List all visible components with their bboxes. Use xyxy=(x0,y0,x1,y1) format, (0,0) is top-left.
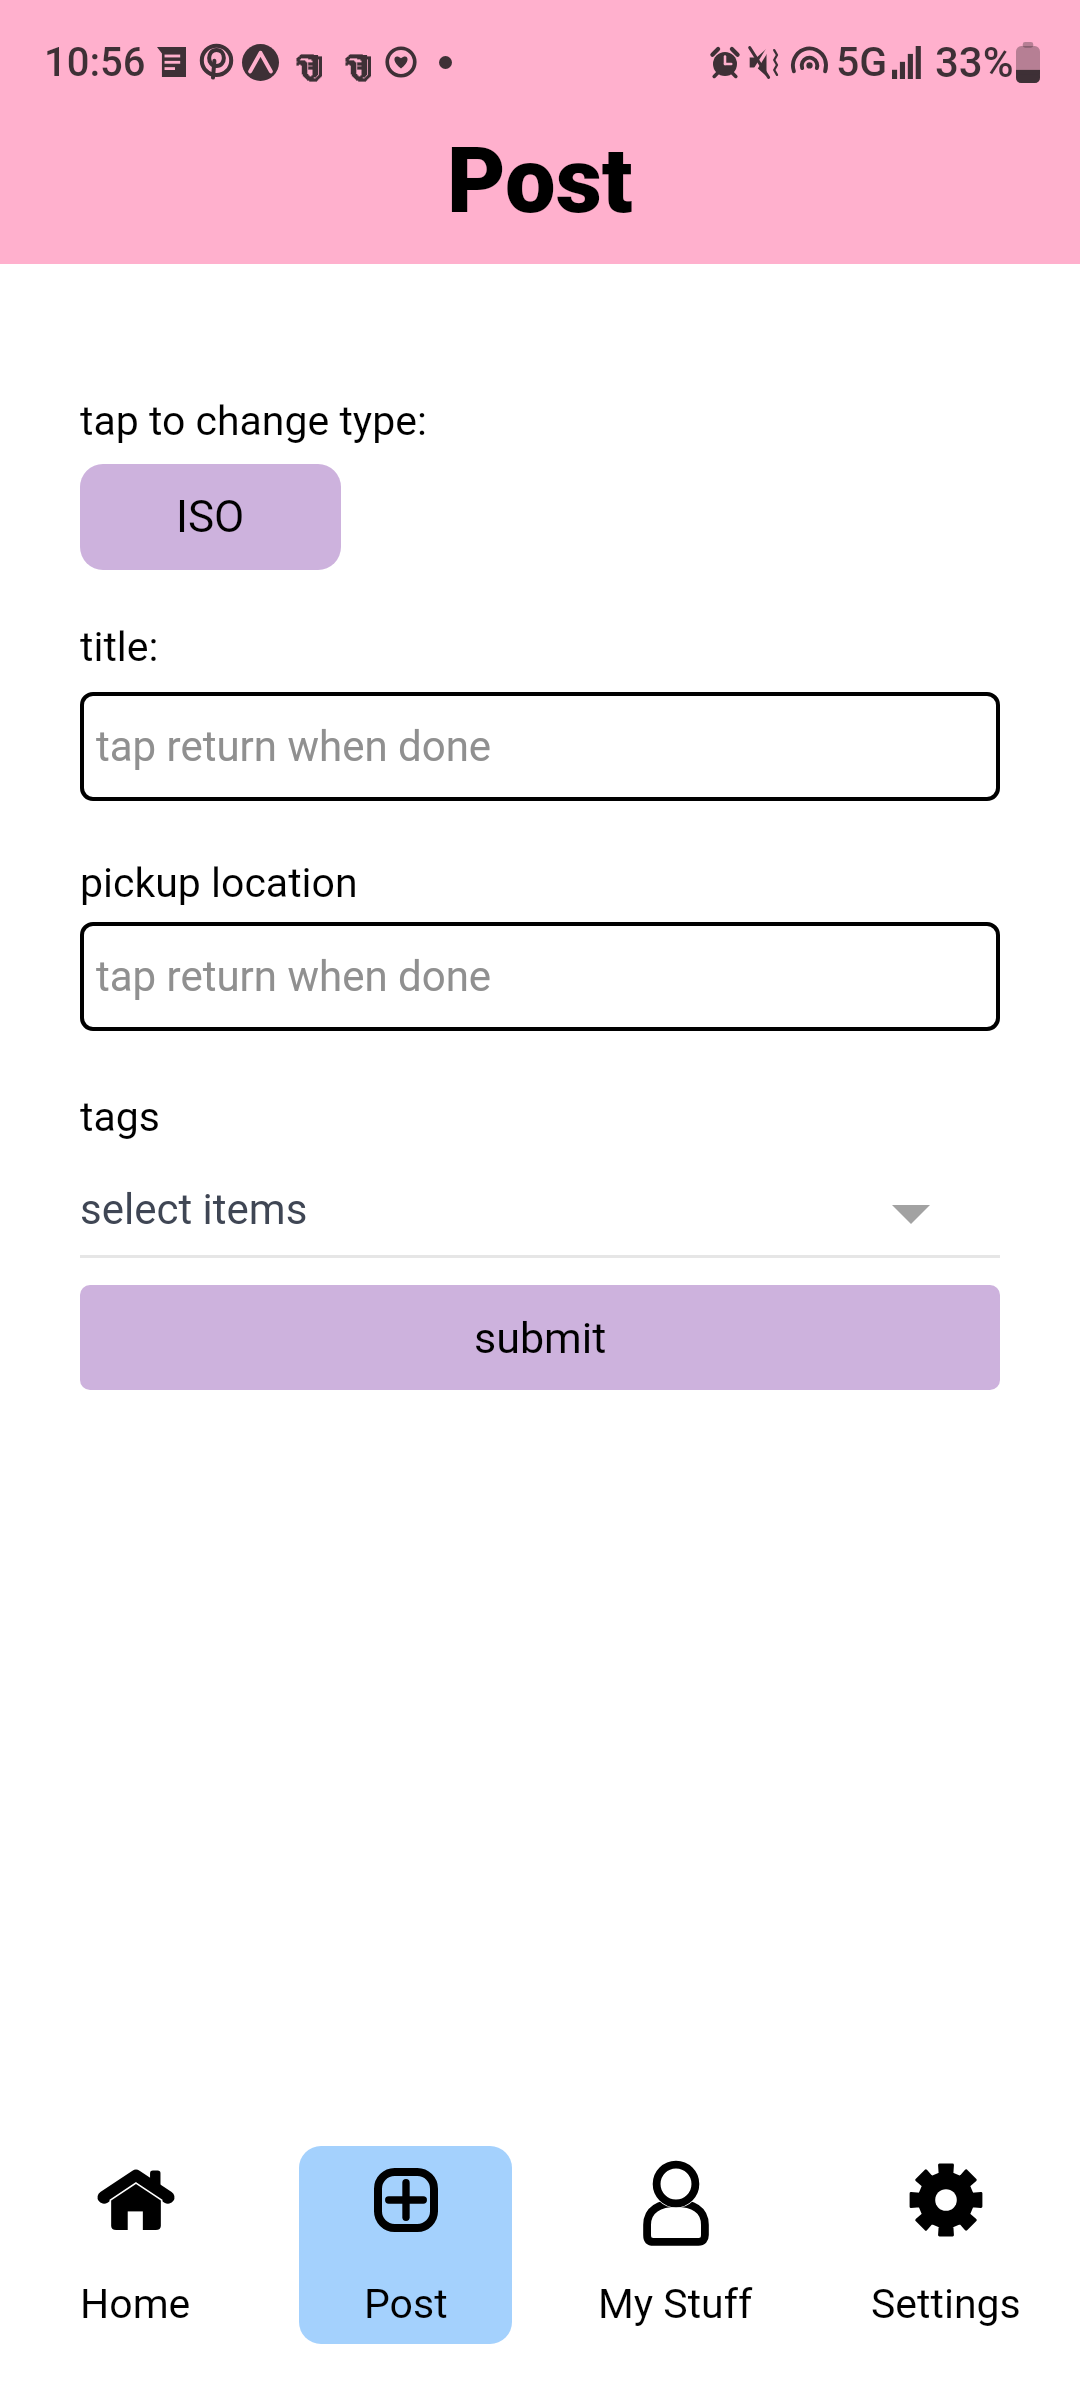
staticText: tags xyxy=(80,1093,160,1141)
staticText: Home xyxy=(80,2280,191,2328)
staticText: submit xyxy=(474,1313,607,1363)
staticText: ISO xyxy=(176,491,245,543)
staticText: select items xyxy=(80,1185,308,1234)
other: My Stuff xyxy=(636,2160,716,2240)
button[interactable]: tap return when done xyxy=(80,692,1000,801)
button[interactable]: submit xyxy=(80,1285,1000,1390)
staticText: 10:56 xyxy=(44,39,146,86)
staticText: 33% xyxy=(935,38,1014,87)
staticText: tap return when done xyxy=(96,722,492,771)
staticText: T xyxy=(296,45,322,89)
staticText: 5G xyxy=(836,38,888,86)
other: Settings xyxy=(906,2160,986,2240)
button[interactable]: Settings xyxy=(839,2146,1052,2344)
staticText: title: xyxy=(80,623,159,671)
staticText: tap return when done xyxy=(96,952,492,1001)
button[interactable]: Home xyxy=(29,2146,242,2344)
other: Post xyxy=(366,2160,446,2240)
button[interactable]: My Stuff xyxy=(569,2146,782,2344)
staticText: Post xyxy=(447,129,633,234)
button[interactable]: tap return when done xyxy=(80,922,1000,1031)
staticText: tap to change type: xyxy=(80,397,427,445)
staticText: T xyxy=(345,45,371,89)
other: Home xyxy=(96,2160,176,2240)
staticText: Post xyxy=(364,2280,448,2328)
button[interactable]: ISO xyxy=(80,464,341,570)
staticText: Settings xyxy=(871,2280,1021,2328)
button[interactable]: Post xyxy=(299,2146,512,2344)
staticText: pickup location xyxy=(80,859,358,907)
button[interactable]: select items xyxy=(80,1171,1000,1258)
staticText: My Stuff xyxy=(598,2280,753,2328)
